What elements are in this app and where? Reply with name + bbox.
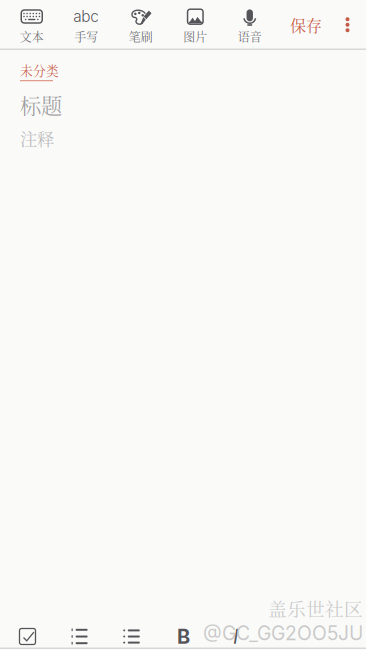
staticText: 保存 [290, 13, 322, 36]
staticText: 图片 [183, 28, 207, 45]
button[interactable]: B [157, 621, 209, 650]
staticText: 语音 [238, 28, 262, 45]
button[interactable]: 文本 [4, 0, 59, 48]
button[interactable]: 语音 [222, 0, 277, 48]
button[interactable]: I [209, 621, 261, 650]
staticText: 文本 [20, 28, 44, 45]
staticText: abc [73, 7, 99, 26]
button[interactable]: Numbered list [53, 621, 105, 650]
button[interactable]: 笔刷 [113, 0, 168, 48]
staticText: B [177, 624, 190, 649]
staticText: 标题 [20, 89, 62, 120]
staticText: 笔刷 [129, 28, 153, 45]
button[interactable]: 图片 [168, 0, 222, 48]
staticText: 手写 [74, 28, 98, 45]
button[interactable]: 保存 [283, 0, 329, 48]
staticText: @GC_GG2OO5JU [203, 622, 363, 645]
staticText: I [233, 624, 238, 649]
staticText: 注释 [20, 126, 54, 151]
button[interactable]: Checklist [1, 621, 53, 650]
button[interactable]: abc [59, 0, 113, 48]
button[interactable]: More options [329, 0, 366, 48]
staticText: 未分类 [20, 61, 59, 79]
staticText: 盖乐世社区 [268, 595, 363, 622]
button[interactable]: Bullet list [105, 621, 157, 650]
